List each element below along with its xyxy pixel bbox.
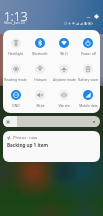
button[interactable]: Bluetooth xyxy=(28,30,52,60)
staticText: Battery saver xyxy=(78,77,99,81)
button[interactable]: Photos · now xyxy=(3,131,100,162)
staticText: Mute xyxy=(36,103,45,107)
staticText: Mobile data xyxy=(79,103,98,107)
staticText: Vibrate xyxy=(58,103,70,107)
staticText: Mon, Jan 29 xyxy=(4,20,25,25)
button[interactable]: Wi-Fi xyxy=(52,30,76,60)
button[interactable]: DND xyxy=(3,86,28,112)
button[interactable]: Settings xyxy=(94,14,99,19)
staticText: 1:13 xyxy=(4,8,28,24)
button[interactable]: Airplane mode xyxy=(52,60,76,86)
staticText: Photos · now xyxy=(13,135,38,140)
button[interactable]: Flashlight xyxy=(3,30,28,60)
button[interactable]: Reading mode xyxy=(3,60,28,86)
staticText: Reading mode xyxy=(4,77,27,81)
staticText: Airplane mode xyxy=(53,77,76,81)
button[interactable]: Edit tiles xyxy=(86,15,91,20)
staticText: Flashlight xyxy=(8,51,23,55)
staticText: Power off xyxy=(81,51,96,55)
button[interactable]: Mute xyxy=(28,86,52,112)
button[interactable]: Hotspot xyxy=(28,60,52,86)
staticText: Hotspot xyxy=(34,77,47,81)
staticText: Bluetooth xyxy=(32,51,48,55)
button[interactable]: Mobile data xyxy=(76,86,100,112)
staticText: Backing up 1 item xyxy=(7,142,48,148)
staticText: DND xyxy=(12,103,20,107)
staticText: Wi-Fi xyxy=(60,51,68,55)
button[interactable]: Power off xyxy=(76,30,100,60)
button[interactable]: Battery saver xyxy=(76,60,100,86)
button[interactable]: Brightness xyxy=(3,116,100,127)
button[interactable]: Vibrate xyxy=(52,86,76,112)
